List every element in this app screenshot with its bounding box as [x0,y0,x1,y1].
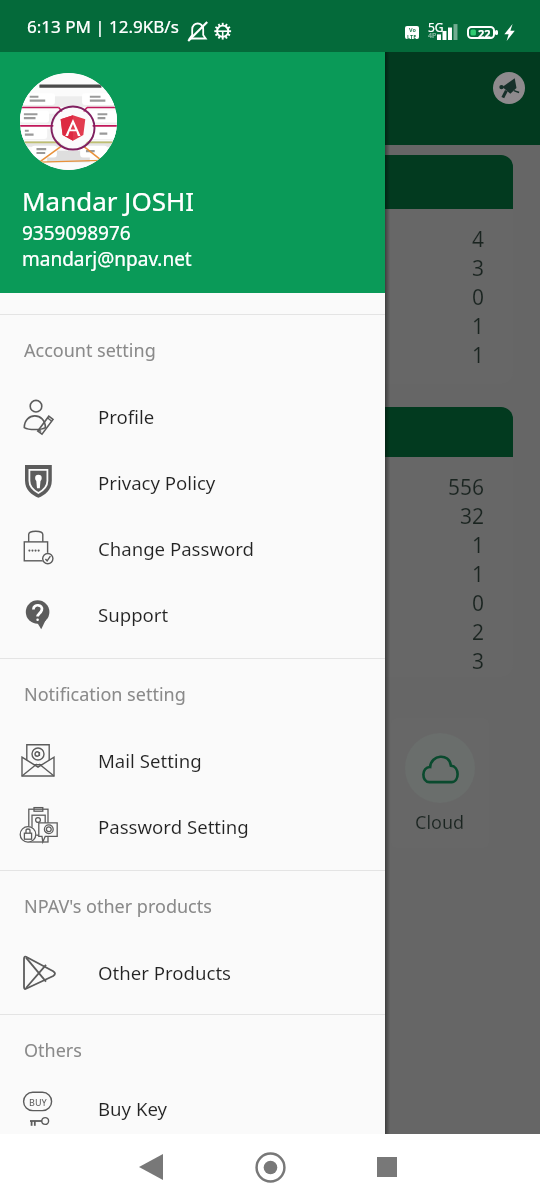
button[interactable]: Change Password [0,515,385,581]
button[interactable]: Recents [353,1140,421,1194]
button[interactable]: Profile [0,383,385,449]
staticText: 2 [472,618,485,647]
button[interactable]: Support [0,581,385,647]
staticText: 6:13 PM | 12.9KB/s [27,15,179,38]
staticText: Support [98,602,169,627]
button[interactable]: Cloud [391,718,489,848]
button[interactable]: Other Products [0,939,385,1005]
staticText: 1 [472,560,485,589]
button[interactable]: BUY [0,1083,385,1134]
button[interactable]: Back [117,1140,185,1194]
staticText: Privacy Policy [98,470,216,495]
staticText: 3 [472,254,485,283]
button[interactable]: Home [236,1140,304,1194]
staticText: Account setting [24,338,385,363]
staticText: 32 [460,502,485,531]
staticText: 1 [472,531,485,560]
staticText: 5G [428,19,444,35]
staticText: Cloud [415,810,465,835]
button[interactable]: Announcements [493,72,525,104]
button[interactable]: Mail Setting [0,727,385,793]
button[interactable]: Privacy Policy [0,449,385,515]
staticText: 9359098976 [22,220,131,246]
staticText: 4 [472,225,485,254]
staticText: NPAV's other products [24,894,385,919]
staticText: 0 [472,283,485,312]
staticText: 3 [472,647,485,676]
staticText: BUY [29,1096,47,1108]
staticText: Password Setting [98,814,249,839]
staticText: Notification setting [24,682,385,707]
staticText: Buy Key [98,1096,168,1121]
staticText: LTE [407,33,417,39]
staticText: 22 [478,26,491,39]
staticText: Mandar JOSHI [22,183,195,218]
staticText: Others [24,1038,385,1063]
staticText: 0 [472,589,485,618]
button[interactable]: Password Setting [0,793,385,859]
staticText: 1 [472,341,485,370]
staticText: Other Products [98,960,232,985]
staticText: 556 [448,473,485,502]
staticText: mandarj@npav.net [22,246,192,272]
staticText: 1 [472,312,485,341]
staticText: 4P [428,31,437,41]
staticText: Profile [98,404,155,429]
staticText: Vo [409,26,416,33]
staticText: Change Password [98,536,255,561]
staticText: Mail Setting [98,748,202,773]
